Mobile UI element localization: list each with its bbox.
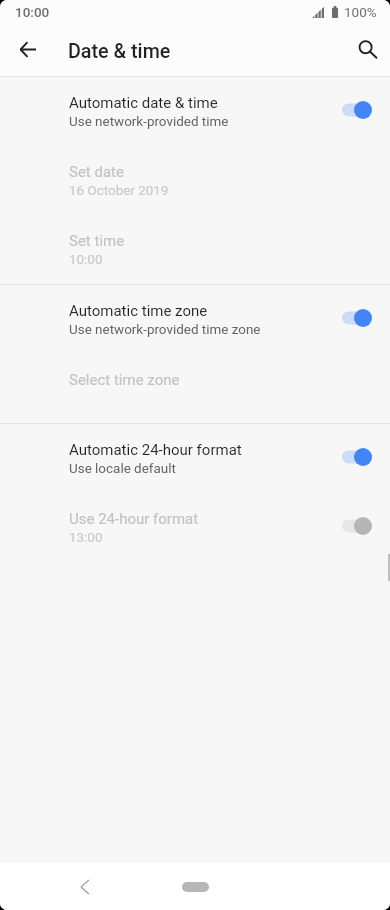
button[interactable]: Select time zone — [0, 354, 390, 423]
button[interactable]: Set date — [0, 146, 390, 215]
button[interactable]: Navigate up — [7, 31, 47, 71]
staticText: Use network-provided time — [69, 114, 229, 130]
button[interactable]: Use 24-hour format — [342, 516, 372, 536]
button[interactable]: Automatic 24-hour format — [342, 447, 372, 467]
button[interactable]: Automatic time zone — [0, 285, 390, 354]
staticText: Automatic 24-hour format — [69, 441, 242, 459]
staticText: 16 October 2019 — [69, 183, 169, 199]
staticText: 100% — [344, 4, 377, 20]
staticText: Set date — [69, 163, 124, 181]
button[interactable]: Automatic time zone — [342, 308, 372, 328]
staticText: Use network-provided time zone — [69, 322, 261, 338]
button[interactable]: Search — [344, 31, 384, 71]
staticText: Use locale default — [69, 461, 176, 477]
button[interactable]: Home — [182, 882, 209, 892]
staticText: Use 24-hour format — [69, 510, 199, 528]
button[interactable]: Automatic date & time — [342, 100, 372, 120]
button[interactable]: Automatic date & time — [0, 77, 390, 146]
staticText: Date & time — [68, 40, 171, 63]
button[interactable]: Automatic 24-hour format — [0, 424, 390, 493]
button[interactable]: Back — [68, 870, 101, 903]
staticText: Automatic date & time — [69, 94, 218, 112]
staticText: Select time zone — [69, 371, 180, 389]
staticText: Automatic time zone — [69, 302, 208, 320]
staticText: 10:00 — [69, 252, 103, 268]
button[interactable]: Set time — [0, 215, 390, 284]
staticText: 13:00 — [69, 530, 103, 546]
button[interactable]: Use 24-hour format — [0, 493, 390, 562]
staticText: 10:00 — [15, 4, 50, 20]
staticText: Set time — [69, 232, 125, 250]
